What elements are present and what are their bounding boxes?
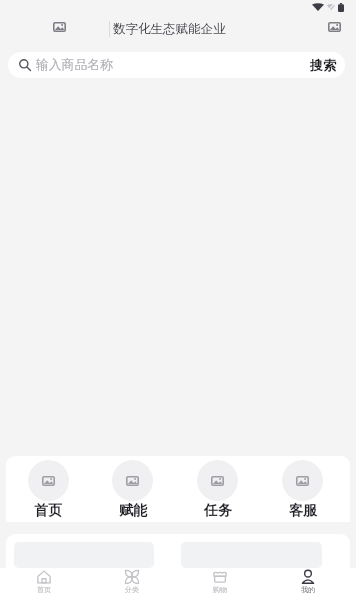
button[interactable]: 首页 [6,460,90,520]
button[interactable]: 首页 [0,568,88,596]
button[interactable]: 购物 [176,568,264,596]
staticText: 首页 [34,502,62,520]
staticText: 分类 [125,585,139,594]
button[interactable]: 搜索 [310,57,336,73]
staticText: 客服 [289,502,317,520]
staticText: 数字化生态赋能企业 [113,21,226,37]
staticText: 购物 [213,585,227,594]
button[interactable]: 客服 [260,460,345,520]
staticText: 搜索 [310,57,336,73]
button[interactable]: 我的 [264,568,352,596]
button[interactable]: 任务 [175,460,260,520]
staticText: 任务 [204,502,232,520]
button[interactable]: Menu [320,14,348,40]
staticText: 赋能 [119,502,147,520]
button[interactable]: 赋能 [90,460,175,520]
staticText: 首页 [37,585,51,594]
button[interactable]: 分类 [88,568,176,596]
staticText: 输入商品名称 [36,57,113,73]
staticText: 我的 [301,585,315,594]
button[interactable]: Logo [45,14,73,40]
